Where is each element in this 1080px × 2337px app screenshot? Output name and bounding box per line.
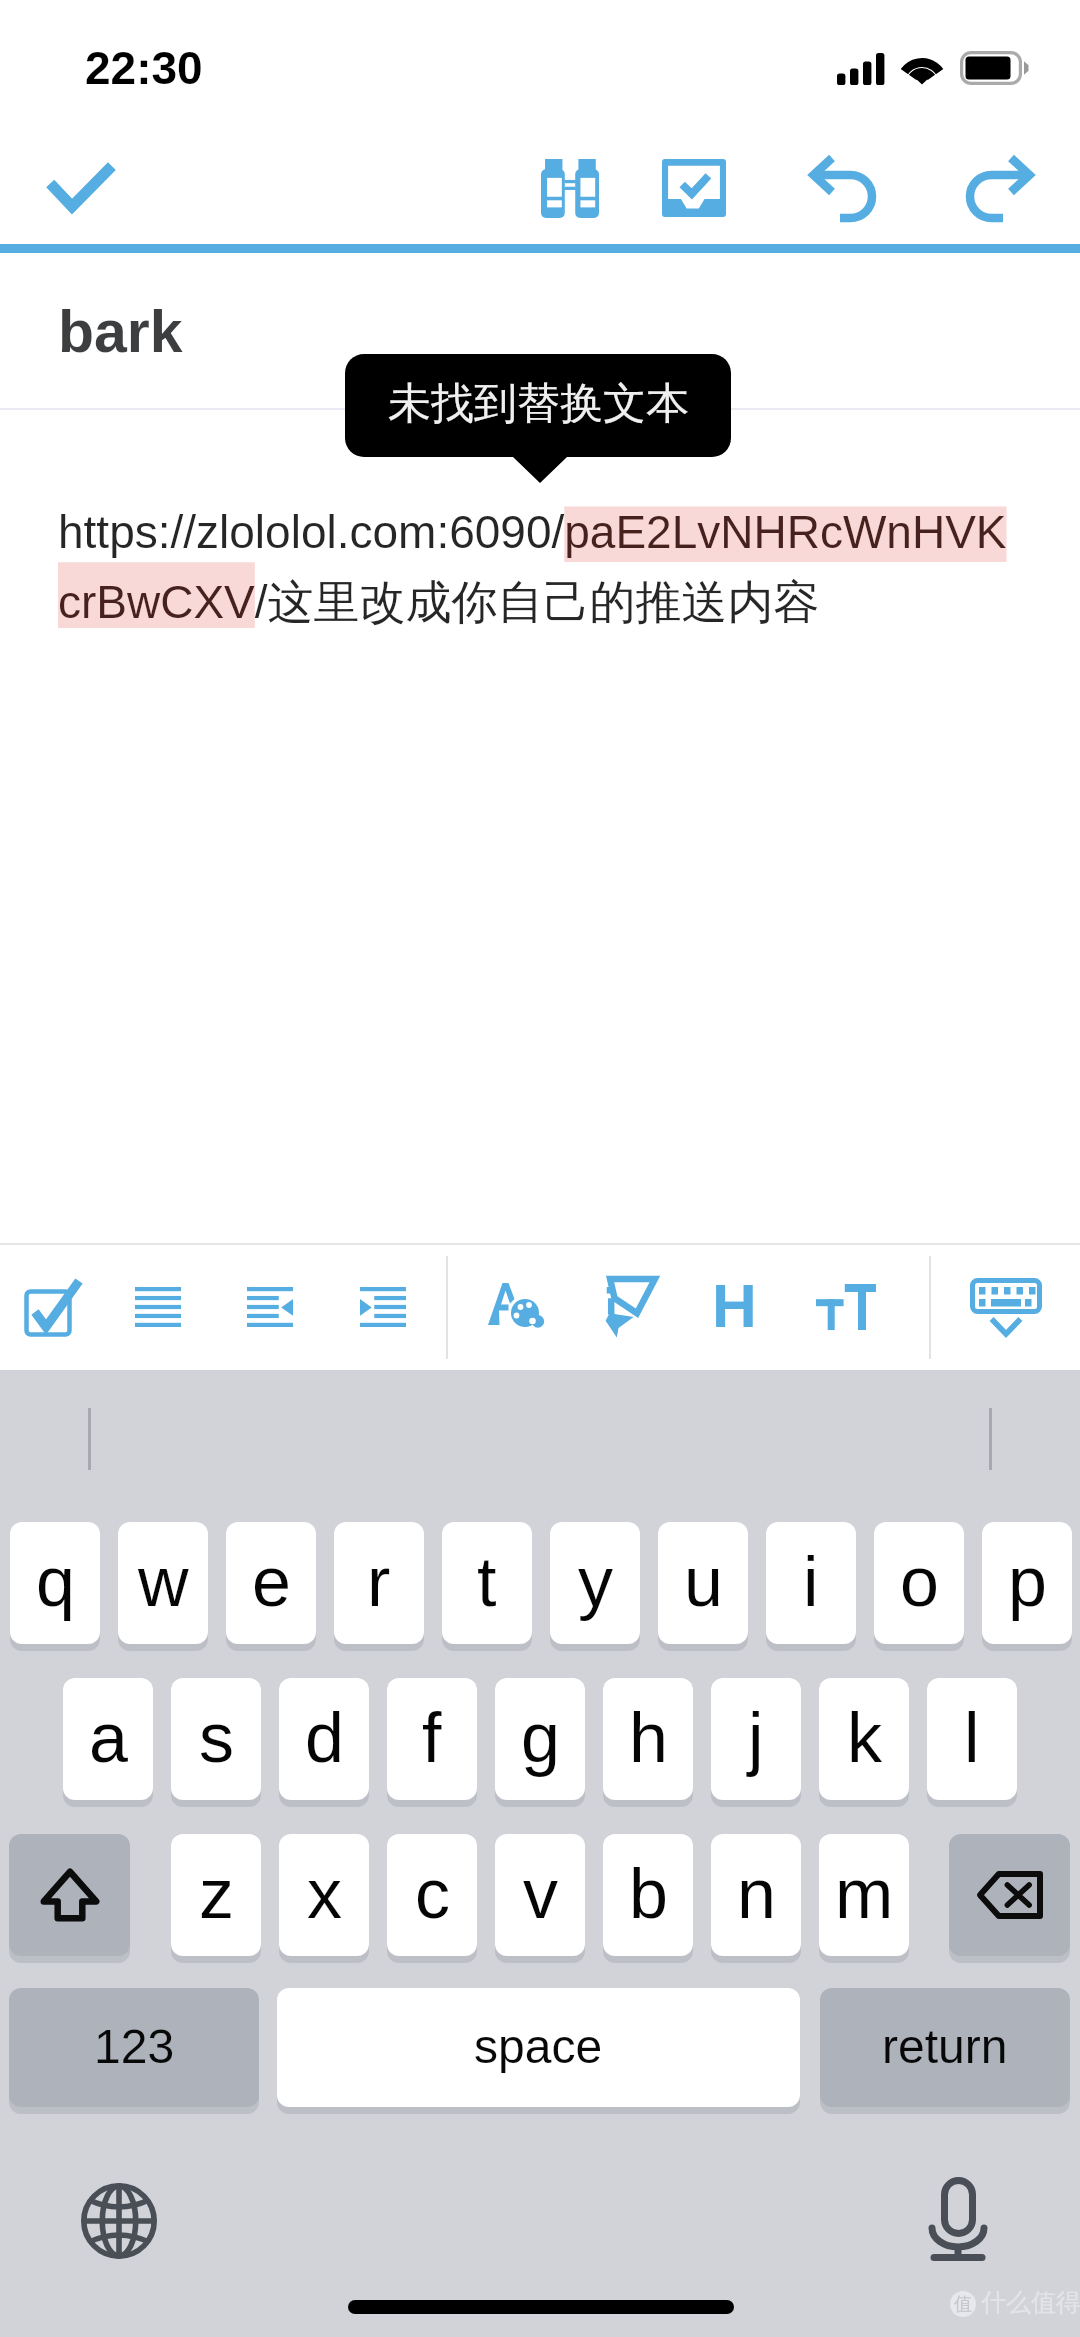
- staticText: q: [36, 1543, 75, 1621]
- button[interactable]: w: [118, 1522, 208, 1644]
- button[interactable]: Search: [520, 136, 620, 240]
- staticText: i: [803, 1543, 819, 1621]
- button[interactable]: h: [603, 1678, 693, 1800]
- staticText: a: [89, 1699, 128, 1777]
- staticText: e: [252, 1543, 291, 1621]
- button[interactable]: y: [550, 1522, 640, 1644]
- button[interactable]: z: [171, 1834, 261, 1956]
- staticText: o: [900, 1543, 939, 1621]
- staticText: return: [882, 2020, 1008, 2074]
- button[interactable]: i: [766, 1522, 856, 1644]
- staticText: f: [422, 1699, 442, 1777]
- staticText: space: [474, 2020, 603, 2074]
- button[interactable]: Font size: [800, 1243, 892, 1370]
- button[interactable]: return: [820, 1988, 1070, 2107]
- button[interactable]: Highlight: [578, 1243, 678, 1370]
- button[interactable]: Redo: [950, 136, 1050, 240]
- button[interactable]: Checklist: [7, 1243, 99, 1370]
- button[interactable]: n: [711, 1834, 801, 1956]
- button[interactable]: e: [226, 1522, 316, 1644]
- button[interactable]: k: [819, 1678, 909, 1800]
- button[interactable]: space: [277, 1988, 800, 2107]
- staticText: k: [847, 1699, 882, 1777]
- staticText: b: [629, 1855, 668, 1933]
- staticText: 未找到替换文本: [388, 377, 689, 431]
- staticText: u: [684, 1543, 723, 1621]
- staticText: H: [712, 1271, 757, 1340]
- button[interactable]: t: [442, 1522, 532, 1644]
- button[interactable]: Hide keyboard: [958, 1243, 1054, 1370]
- button[interactable]: b: [603, 1834, 693, 1956]
- staticText: g: [521, 1699, 560, 1777]
- button[interactable]: x: [279, 1834, 369, 1956]
- button[interactable]: a: [63, 1678, 153, 1800]
- button[interactable]: p: [982, 1522, 1072, 1644]
- button[interactable]: s: [171, 1678, 261, 1800]
- button[interactable]: Backspace: [949, 1834, 1070, 1956]
- staticText: 值: [954, 2293, 972, 2316]
- button[interactable]: u: [658, 1522, 748, 1644]
- staticText: r: [367, 1543, 391, 1621]
- staticText: 什么值得买: [981, 2287, 1080, 2318]
- button[interactable]: Heading: [688, 1243, 780, 1370]
- button[interactable]: l: [927, 1678, 1017, 1800]
- staticText: v: [523, 1855, 558, 1933]
- button[interactable]: Indent: [337, 1243, 429, 1370]
- staticText: x: [307, 1855, 342, 1933]
- staticText: n: [737, 1855, 776, 1933]
- staticText: https://zlololol.com:6090/paE2LvNHRcWnHV…: [58, 506, 1058, 632]
- button[interactable]: d: [279, 1678, 369, 1800]
- button[interactable]: Undo: [792, 136, 892, 240]
- button[interactable]: 123: [9, 1988, 259, 2107]
- button[interactable]: Select all: [644, 136, 744, 240]
- button[interactable]: m: [819, 1834, 909, 1956]
- button[interactable]: g: [495, 1678, 585, 1800]
- button[interactable]: Dictate: [913, 2176, 1003, 2266]
- staticText: z: [199, 1855, 234, 1933]
- button[interactable]: Shift: [9, 1834, 130, 1956]
- staticText: 123: [94, 2020, 175, 2074]
- button[interactable]: r: [334, 1522, 424, 1644]
- button[interactable]: c: [387, 1834, 477, 1956]
- staticText: 22:30: [85, 42, 203, 93]
- button[interactable]: Align: [112, 1243, 204, 1370]
- staticText: h: [629, 1699, 668, 1777]
- staticText: d: [305, 1699, 344, 1777]
- staticText: l: [964, 1699, 980, 1777]
- button[interactable]: Outdent: [224, 1243, 316, 1370]
- button[interactable]: q: [10, 1522, 100, 1644]
- staticText: m: [835, 1855, 894, 1933]
- button[interactable]: Done: [31, 138, 131, 238]
- button[interactable]: f: [387, 1678, 477, 1800]
- staticText: bark: [58, 299, 183, 365]
- staticText: w: [138, 1543, 189, 1621]
- staticText: s: [199, 1699, 234, 1777]
- staticText: p: [1008, 1543, 1047, 1621]
- button[interactable]: Change keyboard: [74, 2176, 164, 2266]
- button[interactable]: v: [495, 1834, 585, 1956]
- button[interactable]: j: [711, 1678, 801, 1800]
- button[interactable]: Text color: [460, 1243, 572, 1370]
- staticText: j: [748, 1699, 764, 1777]
- staticText: c: [415, 1855, 450, 1933]
- staticText: y: [578, 1543, 613, 1621]
- staticText: t: [477, 1543, 497, 1621]
- button[interactable]: o: [874, 1522, 964, 1644]
